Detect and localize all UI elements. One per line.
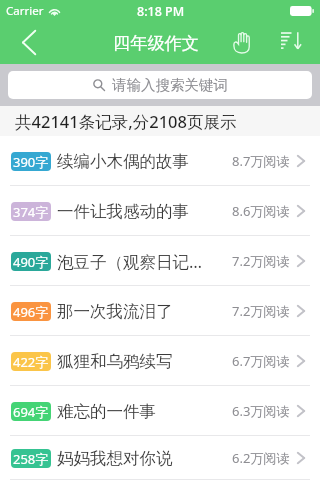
button[interactable]: Back <box>6 21 52 63</box>
staticText: 狐狸和乌鸦续写 <box>57 351 173 372</box>
staticText: Carrier <box>6 3 44 19</box>
staticText: 泡豆子（观察日记… <box>57 250 203 273</box>
staticText: 8.6万阅读 <box>232 202 290 220</box>
staticText: 四年级作文 <box>113 32 199 54</box>
staticText: 694字 <box>13 403 49 421</box>
staticText: 7.2万阅读 <box>232 252 290 270</box>
staticText: 496字 <box>13 303 49 321</box>
staticText: 6.7万阅读 <box>232 352 290 370</box>
staticText: 258字 <box>13 450 49 468</box>
button[interactable]: 请输入搜索关键词 <box>8 71 312 99</box>
button[interactable]: 490字 <box>0 236 320 286</box>
staticText: 390字 <box>13 153 49 171</box>
staticText: 7.2万阅读 <box>232 302 290 320</box>
staticText: 共42141条记录,分2108页展示 <box>15 110 237 133</box>
button[interactable]: 496字 <box>0 286 320 336</box>
staticText: 6.2万阅读 <box>232 449 290 467</box>
button[interactable]: 422字 <box>0 336 320 386</box>
staticText: 6.3万阅读 <box>232 402 290 420</box>
staticText: 续编小木偶的故事 <box>57 151 189 172</box>
staticText: 一件让我感动的事 <box>57 201 189 222</box>
staticText: 8.7万阅读 <box>232 152 290 170</box>
button[interactable]: 374字 <box>0 186 320 236</box>
button[interactable]: 390字 <box>0 136 320 186</box>
staticText: 难忘的一件事 <box>57 401 156 422</box>
staticText: 374字 <box>13 203 49 221</box>
staticText: 490字 <box>13 253 49 271</box>
staticText: 请输入搜索关键词 <box>112 76 228 94</box>
staticText: 8:18 PM <box>137 3 185 20</box>
staticText: 那一次我流泪了 <box>57 301 173 322</box>
button[interactable]: Sort <box>271 19 311 61</box>
staticText: 妈妈我想对你说 <box>57 448 173 469</box>
button[interactable]: 694字 <box>0 386 320 436</box>
button[interactable]: 258字 <box>0 436 320 480</box>
button[interactable]: Hand <box>221 21 261 63</box>
staticText: 422字 <box>13 353 49 371</box>
